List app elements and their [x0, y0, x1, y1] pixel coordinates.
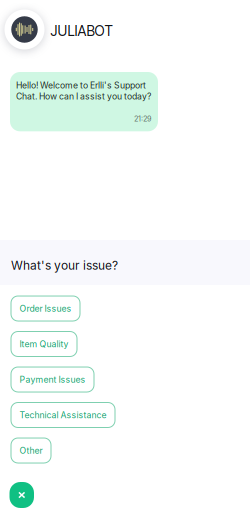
button[interactable]: Close chat	[9, 482, 34, 508]
staticText: Order Issues	[19, 303, 71, 314]
button[interactable]: Other	[11, 438, 51, 463]
button[interactable]: Order Issues	[11, 296, 80, 321]
staticText: Hello! Welcome to Erlli's Support	[16, 80, 146, 90]
staticText: 21:29	[134, 114, 152, 123]
staticText: Item Quality	[19, 339, 68, 349]
button[interactable]: Item Quality	[11, 331, 77, 356]
staticText: What's your issue?	[11, 258, 118, 273]
staticText: JULIABOT	[50, 22, 112, 39]
staticText: Chat. How can I assist you today?	[16, 91, 151, 101]
button[interactable]: Payment Issues	[11, 367, 94, 392]
staticText: Payment Issues	[19, 374, 85, 385]
staticText: Other	[19, 445, 42, 456]
button[interactable]: Technical Assistance	[11, 402, 115, 427]
staticText: Technical Assistance	[19, 410, 106, 420]
